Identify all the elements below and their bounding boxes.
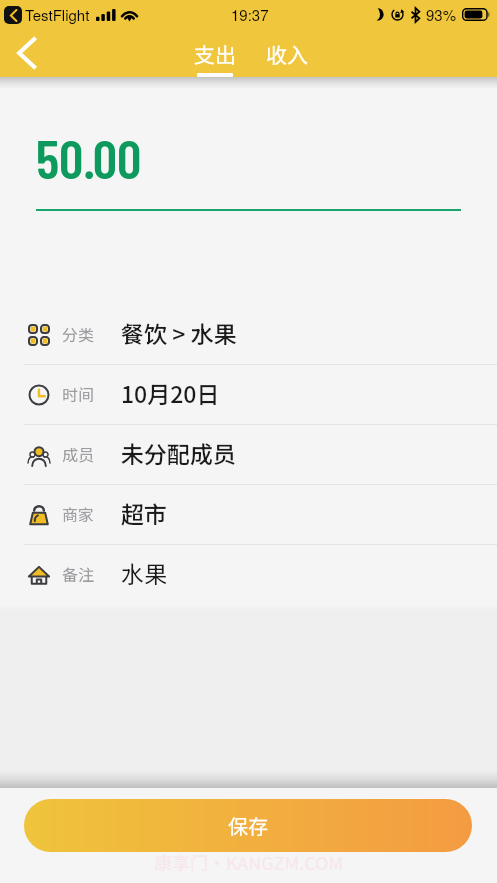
button[interactable]: 支出: [194, 39, 236, 77]
staticText: 餐饮 > 水果: [121, 316, 237, 349]
staticText: 成员: [62, 442, 95, 465]
button[interactable]: 分类: [0, 305, 497, 365]
button[interactable]: 成员: [0, 425, 497, 485]
button[interactable]: 时间: [0, 365, 497, 425]
staticText: 超市: [121, 496, 167, 529]
button[interactable]: 商家: [0, 485, 497, 545]
staticText: 未分配成员: [121, 436, 236, 469]
staticText: 93%: [426, 4, 457, 25]
button[interactable]: 保存: [24, 799, 472, 852]
staticText: 支出: [194, 39, 236, 69]
staticText: 保存: [228, 811, 268, 840]
staticText: 商家: [62, 502, 95, 525]
staticText: 备注: [62, 562, 95, 585]
staticText: 19:37: [231, 4, 269, 25]
staticText: 50.00: [36, 125, 142, 190]
button[interactable]: 备注: [0, 545, 497, 605]
button[interactable]: Back: [2, 29, 50, 77]
staticText: 康享门·KANGZM.COM: [154, 849, 344, 875]
staticText: 水果: [121, 556, 167, 589]
staticText: 分类: [62, 322, 95, 345]
staticText: 时间: [62, 382, 95, 405]
staticText: 收入: [266, 39, 308, 69]
button[interactable]: 收入: [266, 39, 308, 77]
staticText: TestFlight: [25, 4, 90, 25]
staticText: 10月20日: [121, 376, 220, 409]
